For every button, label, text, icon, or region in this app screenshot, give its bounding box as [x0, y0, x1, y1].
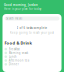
- button[interactable]: Dinner: [4, 62, 59, 66]
- staticText: Good morning, Jordan: [4, 3, 38, 7]
- staticText: Here is your plan for today: [4, 7, 41, 11]
- staticText: Food & Drink: [4, 40, 31, 46]
- staticText: Breakfast: [9, 47, 20, 51]
- staticText: Lunch: [9, 55, 17, 58]
- button[interactable]: Morning snack: [4, 51, 59, 55]
- button[interactable]: Lunch: [4, 55, 59, 59]
- staticText: Dinner: [9, 62, 19, 66]
- staticText: Afternoon tea: [9, 59, 29, 62]
- staticText: Morning snack: [9, 51, 28, 55]
- staticText: 2 of 6 tasks complete: [16, 26, 47, 30]
- staticText: Keep going to reach your goal: [10, 31, 54, 34]
- staticText: Search meals: [6, 17, 22, 20]
- button[interactable]: Afternoon tea: [4, 59, 59, 62]
- button[interactable]: Breakfast: [4, 47, 59, 51]
